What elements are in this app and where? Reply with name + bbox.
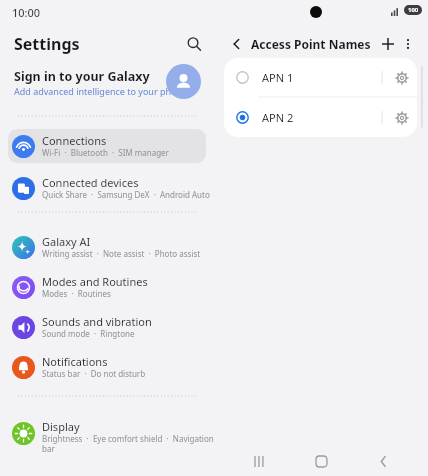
button[interactable]: More options (395, 31, 421, 57)
staticText: Connections (42, 133, 107, 148)
staticText: APN 1 (262, 70, 294, 85)
button[interactable]: Home (304, 446, 338, 476)
button[interactable]: Sign in to your Galaxy (0, 60, 214, 104)
staticText: Connected devices (42, 175, 139, 190)
staticText: bar (42, 443, 55, 454)
staticText: Settings (14, 33, 80, 55)
button[interactable]: Modes and Routines (0, 270, 214, 304)
staticText: Access Point Names (251, 36, 371, 52)
button[interactable]: APN settings (392, 108, 412, 128)
staticText: Galaxy AI (42, 234, 91, 249)
staticText: 100 (408, 6, 419, 14)
staticText: Notifications (42, 354, 108, 369)
button[interactable]: Galaxy AI (0, 230, 214, 264)
staticText: Sign in to your Galaxy (14, 68, 150, 85)
staticText: APN 2 (262, 110, 294, 125)
staticText: Sounds and vibration (42, 314, 152, 329)
staticText: Wi-Fi · Bluetooth · SIM manager (42, 147, 169, 158)
staticText: Display (42, 419, 80, 434)
button[interactable]: Add (375, 31, 401, 57)
button[interactable]: Connections (8, 129, 206, 163)
button[interactable]: Recents (242, 446, 276, 476)
staticText: 10:00 (12, 5, 41, 20)
button[interactable]: Back (366, 446, 400, 476)
button[interactable]: Notifications (0, 350, 214, 384)
staticText: Modes · Routines (42, 288, 111, 299)
staticText: Writing assist · Note assist · Photo ass… (42, 248, 201, 259)
button[interactable]: Back (224, 31, 250, 57)
button[interactable]: APN settings (392, 68, 412, 88)
staticText: Status bar · Do not disturb (42, 368, 146, 379)
button[interactable]: Connected devices (0, 171, 214, 205)
button[interactable]: Sounds and vibration (0, 310, 214, 344)
button[interactable]: Search (182, 32, 206, 56)
button[interactable]: APN 1 (224, 58, 417, 97)
staticText: Brightness · Eye comfort shield · Naviga… (42, 433, 214, 444)
staticText: Sound mode · Ringtone (42, 328, 135, 339)
staticText: Modes and Routines (42, 274, 148, 289)
button[interactable]: APN 2 (224, 98, 417, 137)
staticText: Quick Share · Samsung DeX · Android Auto (42, 189, 210, 200)
staticText: Add advanced intelligence to your phone. (14, 85, 190, 97)
button[interactable]: Display (0, 412, 214, 458)
